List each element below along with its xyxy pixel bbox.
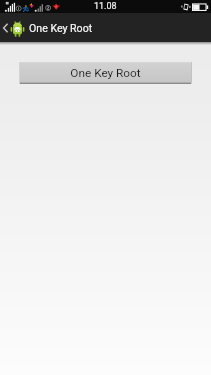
staticText: One Key Root xyxy=(29,22,93,34)
staticText: One Key Root xyxy=(70,66,141,80)
button[interactable]: Back xyxy=(0,13,10,42)
button[interactable]: One Key Root xyxy=(19,62,192,84)
staticText: 11.08 xyxy=(94,1,117,12)
